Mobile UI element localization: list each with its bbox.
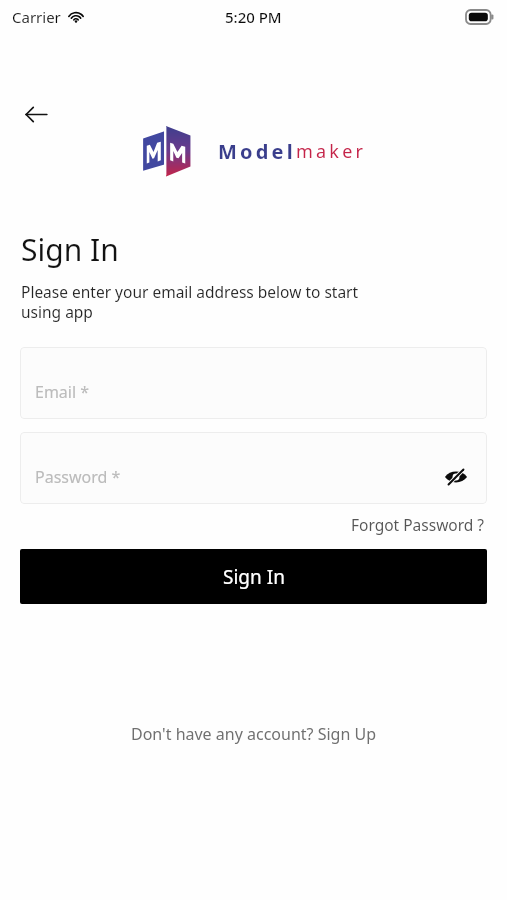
staticText: Password *: [35, 466, 121, 488]
staticText: Model: [218, 138, 296, 165]
staticText: Sign In: [21, 229, 119, 270]
staticText: Sign In: [223, 564, 285, 590]
button[interactable]: Email *: [20, 347, 487, 419]
staticText: maker: [296, 139, 367, 164]
staticText: Please enter your email address below to…: [21, 281, 359, 323]
button[interactable]: Forgot Password ?: [349, 512, 487, 537]
button[interactable]: Password *: [20, 432, 487, 504]
staticText: Email *: [35, 381, 90, 403]
button[interactable]: Back: [14, 92, 58, 136]
button[interactable]: Don't have any account? Sign Up: [127, 719, 380, 749]
staticText: Carrier: [12, 7, 61, 27]
staticText: 5:20 PM: [225, 7, 282, 27]
button[interactable]: Sign In: [20, 549, 487, 604]
button[interactable]: Toggle password visibility: [441, 462, 471, 492]
